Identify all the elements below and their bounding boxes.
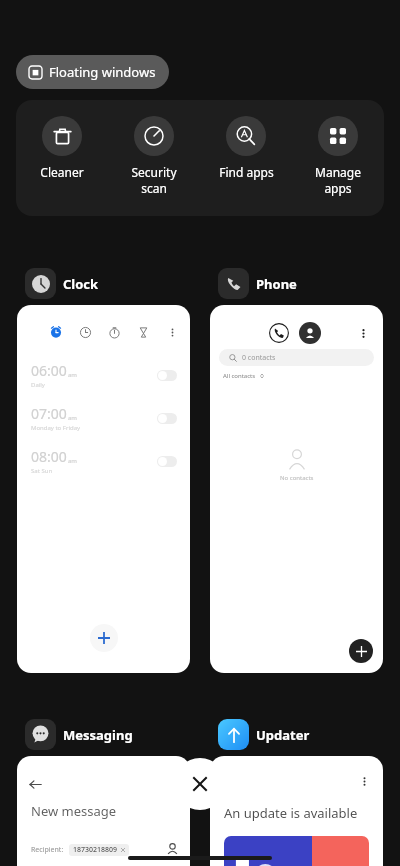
staticText: 06:00 (31, 361, 67, 380)
button[interactable]: Phone (218, 268, 297, 299)
staticText: 08:00 (31, 447, 67, 466)
button[interactable]: Messaging (25, 719, 133, 750)
staticText: Clock (63, 275, 99, 293)
staticText: Manage apps (315, 164, 361, 196)
button[interactable]: Back (17, 756, 190, 866)
button[interactable]: Clock (25, 268, 99, 299)
button[interactable]: More options (210, 756, 383, 866)
button[interactable]: Security scan (108, 100, 200, 216)
staticText: Monday to Friday (31, 424, 81, 432)
staticText: No contacts (280, 474, 314, 482)
staticText: Security scan (131, 164, 177, 196)
button[interactable]: Cleaner (16, 100, 108, 216)
button[interactable]: Floating windows (16, 55, 169, 89)
staticText: Cleaner (40, 164, 84, 180)
button[interactable]: Dialpad (210, 305, 383, 673)
staticText: An update is available (224, 804, 358, 822)
button[interactable]: More options (355, 325, 371, 341)
button[interactable]: 06:00 (17, 305, 190, 673)
button[interactable]: Manage apps (292, 100, 384, 216)
button[interactable]: Close all (174, 758, 226, 810)
button[interactable]: Add contact (349, 639, 373, 663)
staticText: All contacts (223, 372, 256, 380)
staticText: am (68, 414, 77, 422)
staticText: Floating windows (49, 63, 156, 81)
button[interactable]: Toggle alarm (157, 456, 177, 467)
button[interactable]: Dialpad (269, 323, 289, 343)
staticText: Updater (256, 726, 310, 744)
staticText: am (68, 371, 77, 379)
staticText: Phone (256, 275, 297, 293)
staticText: Daily (31, 381, 45, 389)
staticText: Sat Sun (31, 467, 53, 475)
button[interactable]: 0 contacts (219, 349, 374, 366)
staticText: 07:00 (31, 404, 67, 423)
staticText: am (68, 457, 77, 465)
staticText: Recipient: (31, 845, 64, 855)
button[interactable]: Back (28, 777, 43, 792)
staticText: 18730218809 (73, 845, 118, 855)
staticText: Find apps (219, 164, 274, 180)
button[interactable]: Add alarm (90, 624, 118, 652)
button[interactable]: Toggle alarm (157, 413, 177, 424)
staticText: 0 contacts (242, 353, 276, 363)
staticText: New message (31, 802, 117, 820)
button[interactable]: More options (357, 774, 371, 788)
button[interactable]: Find apps (200, 100, 292, 216)
staticText: Messaging (63, 726, 133, 744)
button[interactable]: Contacts (299, 322, 321, 344)
button[interactable]: Updater (218, 719, 310, 750)
button[interactable]: Toggle alarm (157, 370, 177, 381)
